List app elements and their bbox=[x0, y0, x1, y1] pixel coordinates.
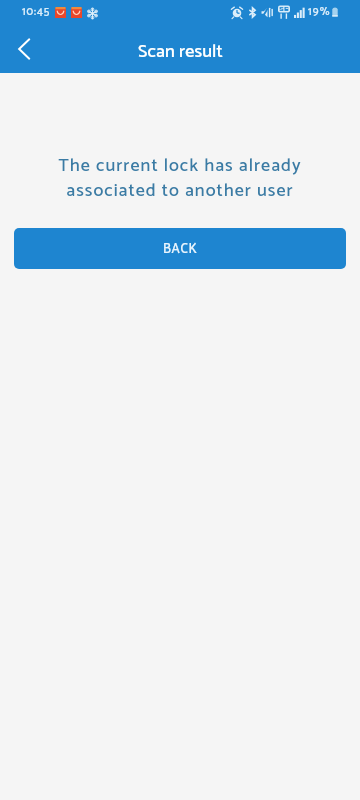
staticText: BACK bbox=[163, 239, 198, 260]
button[interactable]: Back bbox=[0, 25, 48, 73]
button[interactable]: BACK bbox=[14, 228, 346, 269]
staticText: The current lock has already associated … bbox=[14, 151, 346, 206]
staticText: Scan result bbox=[138, 37, 223, 67]
staticText: 10:45 bbox=[22, 3, 51, 21]
staticText: 19% bbox=[308, 3, 331, 21]
